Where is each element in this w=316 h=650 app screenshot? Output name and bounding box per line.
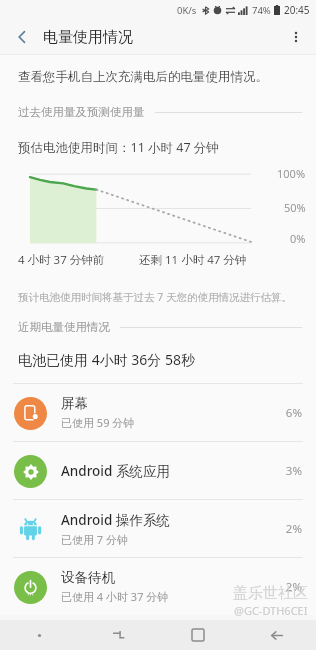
button[interactable]: 屏幕	[0, 384, 316, 441]
staticText: 屏幕	[61, 395, 88, 412]
staticText: 2%	[285, 579, 302, 595]
button[interactable]: Home	[158, 620, 237, 650]
staticText: 74%	[252, 4, 271, 17]
button[interactable]: Android 操作系统	[0, 500, 316, 557]
staticText: 查看您手机自上次充满电后的电量使用情况。	[18, 69, 268, 85]
staticText: 盖乐世社区	[233, 584, 308, 603]
staticText: 预估电池使用时间：11 小时 47 分钟	[18, 139, 219, 156]
staticText: 设备待机	[61, 569, 115, 586]
staticText: 6%	[285, 405, 302, 421]
button[interactable]: Back	[8, 23, 36, 51]
staticText: 0K/s	[177, 4, 197, 17]
button[interactable]: Android 系统应用	[0, 442, 316, 499]
staticText: 20:45	[284, 3, 310, 17]
button[interactable]: 设备待机	[0, 558, 316, 615]
button[interactable]: Menu	[0, 620, 79, 650]
staticText: 已使用 59 分钟	[61, 415, 135, 430]
button[interactable]: Back	[237, 620, 316, 650]
button[interactable]: Recents	[79, 620, 158, 650]
staticText: 已使用 4 小时 37 分钟	[61, 589, 169, 604]
staticText: Android 系统应用	[61, 462, 170, 480]
staticText: 电池已使用 4小时 36分 58秒	[18, 350, 195, 369]
staticText: @GC-DTH6CEI	[234, 603, 308, 618]
staticText: 100%	[277, 166, 306, 181]
staticText: 50%	[284, 200, 306, 215]
staticText: 0%	[290, 231, 306, 246]
staticText: 2%	[285, 521, 302, 537]
staticText: 近期电量使用情况	[18, 320, 110, 334]
staticText: 预计电池使用时间将基于过去 7 天您的使用情况进行估算。	[18, 290, 292, 304]
staticText: 过去使用量及预测使用量	[18, 105, 145, 119]
button[interactable]: More options	[282, 23, 310, 51]
staticText: 4 小时 37 分钟前	[18, 252, 105, 268]
staticText: 3%	[285, 463, 302, 479]
staticText: Android 操作系统	[61, 511, 170, 529]
staticText: 已使用 7 分钟	[61, 532, 129, 547]
staticText: 电量使用情况	[43, 28, 133, 47]
staticText: 还剩 11 小时 47 分钟	[139, 252, 247, 268]
